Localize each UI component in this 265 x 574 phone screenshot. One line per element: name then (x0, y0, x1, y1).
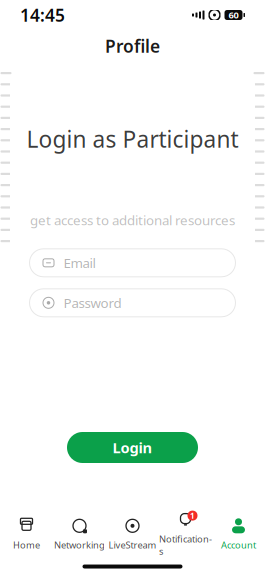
button[interactable]: Networking (53, 511, 106, 557)
staticText: Home (13, 539, 40, 551)
button[interactable]: Notifications (159, 511, 212, 557)
staticText: Account (221, 539, 256, 551)
staticText: 60 (228, 9, 238, 21)
staticText: Login (112, 438, 152, 457)
staticText: LiveStream (108, 539, 156, 551)
button[interactable]: Email (29, 249, 235, 277)
staticText: get access to additional resources (30, 211, 235, 229)
staticText: 14:45 (20, 3, 65, 26)
staticText: Notifications (159, 533, 212, 557)
staticText: Password (63, 294, 121, 312)
staticText: Email (63, 254, 95, 272)
button[interactable]: Account (212, 511, 265, 557)
button[interactable]: Home (0, 511, 53, 557)
staticText: Login as Participant (26, 124, 238, 154)
button[interactable]: Login (67, 432, 198, 463)
staticText: 1 (190, 510, 195, 521)
staticText: Networking (54, 539, 105, 551)
button[interactable]: LiveStream (106, 511, 159, 557)
staticText: Profile (105, 34, 160, 57)
button[interactable]: Password (29, 289, 235, 317)
